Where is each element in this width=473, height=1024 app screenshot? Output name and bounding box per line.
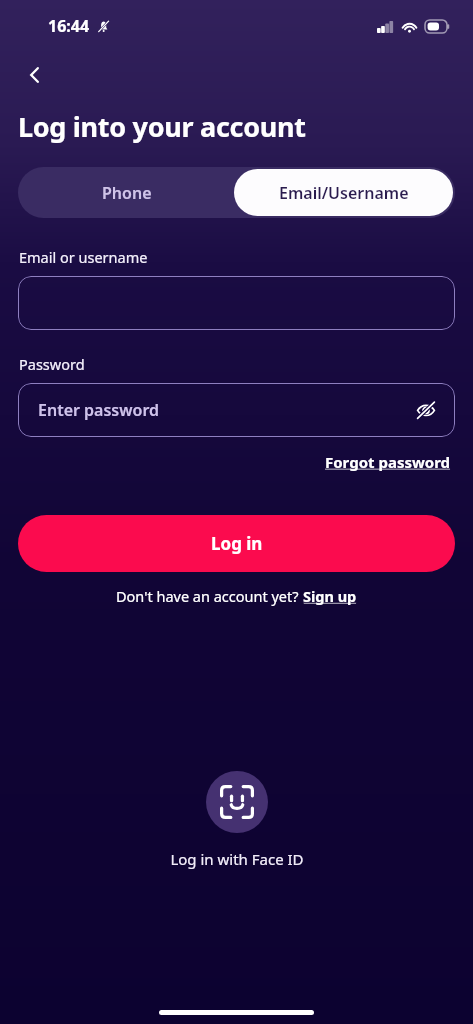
staticText: Email or username	[19, 247, 148, 267]
staticText: Log in	[211, 532, 263, 555]
staticText: Sign up	[303, 586, 357, 606]
staticText: 16:44	[48, 15, 90, 37]
button[interactable]: Show password	[407, 391, 445, 429]
button[interactable]: Log in	[18, 515, 455, 572]
staticText: Log in with Face ID	[170, 849, 304, 869]
staticText: Log into your account	[18, 108, 306, 145]
staticText: Email/Username	[279, 182, 409, 204]
staticText: Phone	[102, 182, 152, 204]
button[interactable]: Email/Username	[234, 169, 453, 216]
staticText: Password	[19, 354, 85, 374]
staticText: Forgot password	[325, 452, 451, 472]
staticText: Don't have an account yet?	[116, 586, 303, 606]
staticText: Enter password	[38, 399, 160, 421]
button[interactable]: Phone	[18, 167, 236, 218]
button[interactable]: Sign up	[303, 586, 357, 606]
button[interactable]	[18, 276, 455, 330]
button[interactable]: Enter password	[18, 383, 455, 437]
button[interactable]: Forgot password	[322, 449, 454, 475]
button[interactable]: Back	[12, 52, 58, 98]
button[interactable]: Log in with Face ID	[206, 771, 268, 833]
